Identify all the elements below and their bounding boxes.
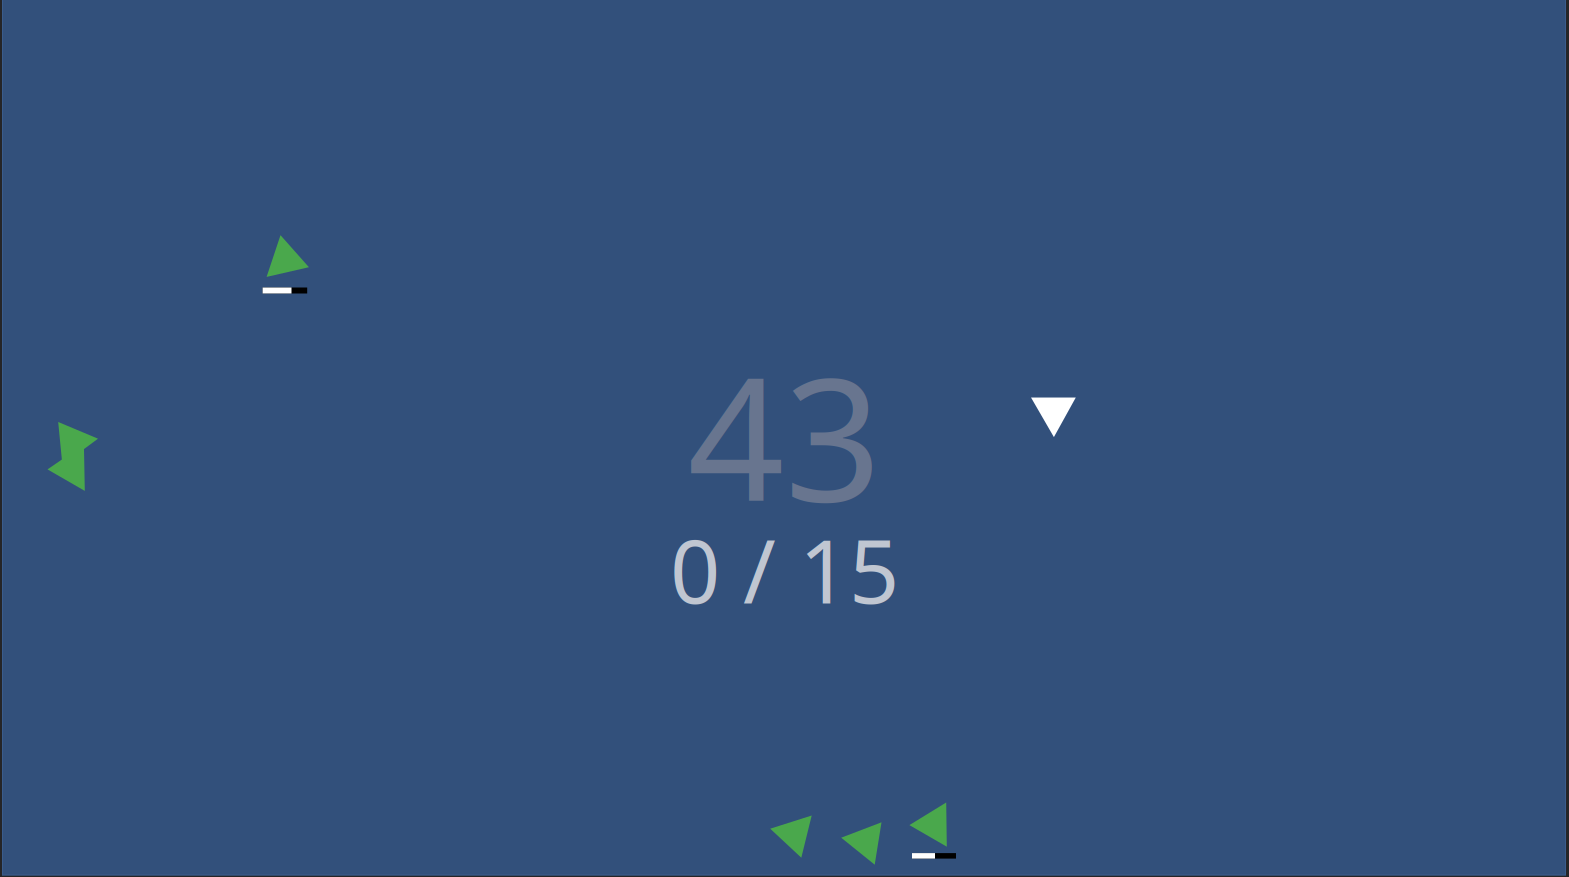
staticText: 43 (687, 323, 881, 548)
button[interactable]: Game arena, 43 seconds remaining, 0 of 1… (0, 0, 1569, 877)
staticText: 0 / 15 (670, 511, 899, 628)
